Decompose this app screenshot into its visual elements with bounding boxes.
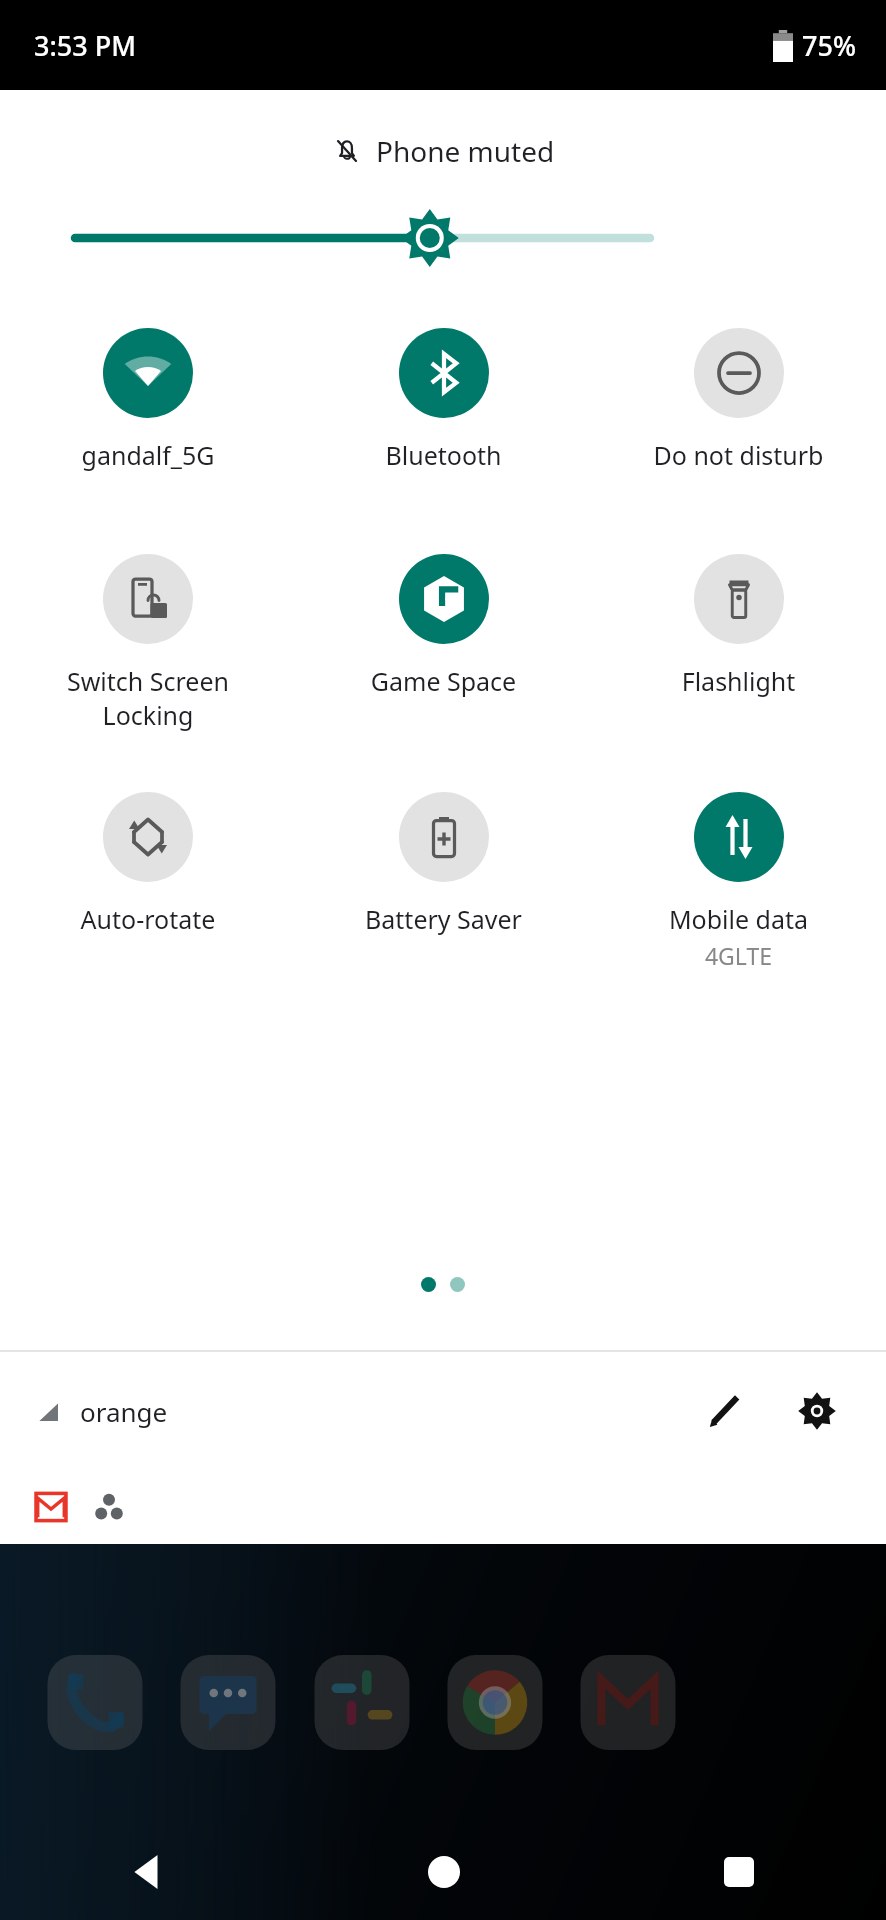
staticText: Switch Screen Locking (6, 664, 290, 732)
button[interactable]: orange (34, 1394, 168, 1429)
staticText: 3:53 PM (34, 27, 136, 64)
staticText: 4GLTE (591, 940, 886, 971)
button[interactable]: Do not disturb (591, 328, 886, 472)
staticText: orange (80, 1394, 168, 1429)
button[interactable]: Flashlight (591, 554, 886, 698)
staticText: Mobile data (597, 902, 880, 936)
staticText: Bluetooth (302, 438, 585, 472)
staticText: Phone muted (376, 132, 555, 170)
button[interactable]: Settings (782, 1376, 852, 1446)
button[interactable]: Bluetooth (296, 328, 591, 472)
staticText: 75% (802, 27, 856, 64)
button[interactable]: Auto-rotate (0, 792, 296, 936)
staticText: Game Space (302, 664, 585, 698)
staticText: Auto-rotate (6, 902, 290, 936)
button[interactable] (0, 208, 886, 268)
staticText: gandalf_5G (6, 438, 290, 472)
button[interactable]: Back (0, 1824, 296, 1920)
button[interactable]: gandalf_5G (0, 328, 296, 472)
button[interactable]: Edit (690, 1376, 760, 1446)
button[interactable]: Switch Screen Locking (0, 554, 296, 732)
button[interactable]: Recents (591, 1824, 886, 1920)
button[interactable]: Game Space (296, 554, 591, 698)
button[interactable]: Home (296, 1824, 591, 1920)
staticText: Battery Saver (302, 902, 585, 936)
button[interactable]: Battery Saver (296, 792, 591, 936)
button[interactable]: Mobile data (591, 792, 886, 971)
staticText: Do not disturb (597, 438, 880, 472)
button[interactable] (0, 1470, 886, 1544)
staticText: Flashlight (597, 664, 880, 698)
